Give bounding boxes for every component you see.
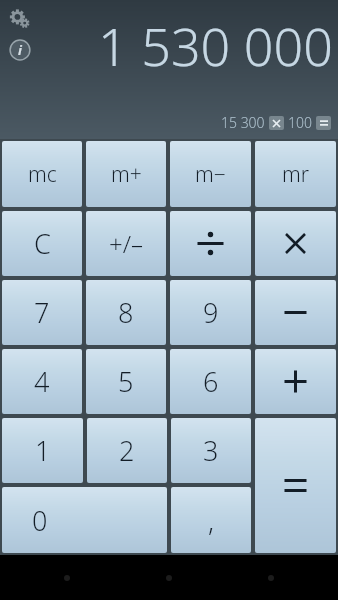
- staticText: 7: [34, 294, 50, 331]
- button[interactable]: m−: [170, 141, 251, 207]
- button[interactable]: Equals: [255, 418, 336, 553]
- button[interactable]: 3: [171, 418, 251, 483]
- staticText: m+: [111, 160, 142, 189]
- button[interactable]: Plus: [255, 349, 336, 414]
- staticText: 3: [203, 432, 219, 469]
- button[interactable]: Settings: [7, 7, 33, 33]
- staticText: ,: [208, 502, 215, 539]
- staticText: mc: [28, 160, 57, 189]
- button[interactable]: 7: [2, 280, 82, 345]
- staticText: 4: [34, 363, 50, 400]
- staticText: 1: [35, 432, 51, 469]
- staticText: 2: [119, 432, 135, 469]
- staticText: 8: [118, 294, 134, 331]
- staticText: i: [18, 41, 22, 59]
- button[interactable]: 5: [86, 349, 166, 414]
- button[interactable]: 6: [170, 349, 251, 414]
- button[interactable]: 9: [170, 280, 251, 345]
- button[interactable]: mc: [2, 141, 82, 207]
- staticText: 15 300: [221, 113, 265, 132]
- staticText: 6: [203, 363, 219, 400]
- staticText: 100: [288, 113, 312, 132]
- button[interactable]: C: [2, 211, 82, 276]
- button[interactable]: 0: [2, 487, 167, 553]
- button[interactable]: m+: [86, 141, 166, 207]
- staticText: m−: [195, 160, 226, 189]
- button[interactable]: Minus: [255, 280, 336, 345]
- button[interactable]: Multiply: [255, 211, 336, 276]
- staticText: +/–: [109, 227, 144, 260]
- button[interactable]: 8: [86, 280, 166, 345]
- button[interactable]: Info: [9, 39, 31, 61]
- staticText: 5: [118, 363, 134, 400]
- button[interactable]: ,: [171, 487, 251, 553]
- staticText: mr: [282, 160, 310, 189]
- staticText: 1 530 000: [98, 10, 333, 81]
- staticText: 9: [203, 294, 219, 331]
- button[interactable]: Divide: [170, 211, 251, 276]
- button[interactable]: 1: [2, 418, 83, 483]
- button[interactable]: 2: [87, 418, 167, 483]
- staticText: C: [34, 225, 51, 262]
- staticText: 0: [32, 502, 48, 539]
- button[interactable]: +/–: [86, 211, 166, 276]
- button[interactable]: mr: [255, 141, 336, 207]
- button[interactable]: 4: [2, 349, 82, 414]
